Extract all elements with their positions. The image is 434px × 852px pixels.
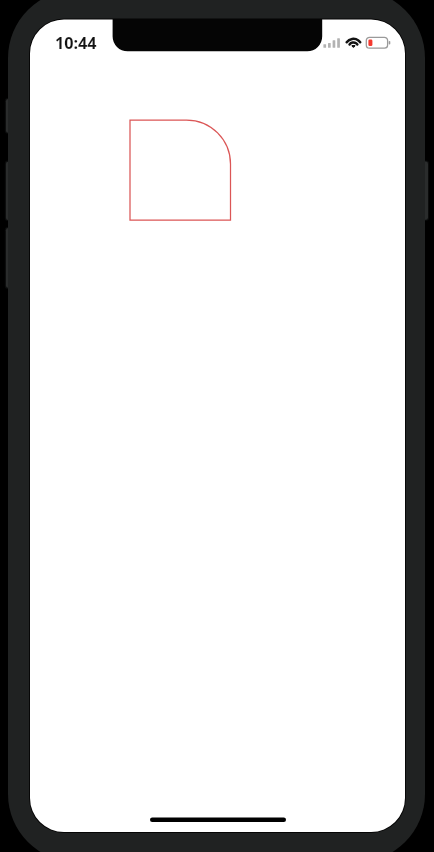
button[interactable]: 10:44 <box>55 32 97 54</box>
button[interactable]: Rounded corner shape <box>130 120 231 220</box>
staticText: 10:44 <box>55 32 97 54</box>
button[interactable]: Home indicator <box>150 810 286 828</box>
